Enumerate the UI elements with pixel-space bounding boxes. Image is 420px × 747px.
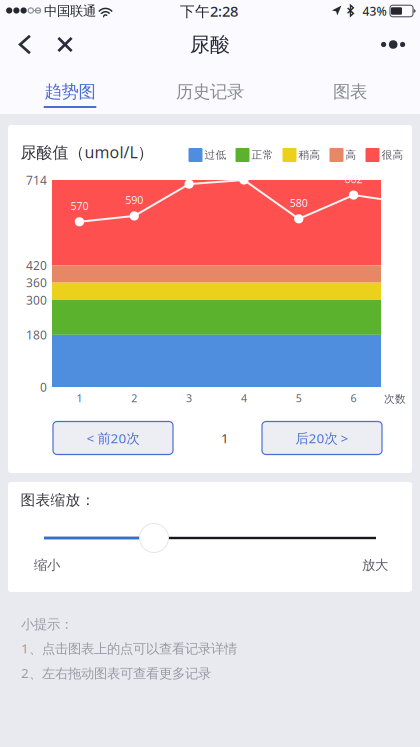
staticText: 580: [290, 196, 308, 210]
staticText: 趋势图: [44, 81, 95, 102]
staticText: 570: [70, 199, 88, 213]
staticText: 43%: [362, 3, 386, 19]
staticText: 历史记录: [176, 81, 244, 102]
staticText: 后20次 >: [295, 429, 348, 447]
staticText: 590: [125, 193, 143, 207]
staticText: 662: [345, 172, 363, 186]
staticText: 图表: [333, 81, 367, 102]
staticText: 1: [76, 391, 82, 405]
staticText: 5: [296, 391, 302, 405]
staticText: 缩小: [34, 557, 60, 573]
staticText: 正常: [251, 148, 273, 161]
staticText: 尿酸值（umol/L）: [20, 141, 153, 163]
staticText: 714: [26, 172, 47, 188]
staticText: 放大: [362, 557, 388, 573]
staticText: 2: [131, 391, 137, 405]
staticText: 360: [26, 275, 47, 291]
staticText: 中国联通: [44, 3, 96, 19]
staticText: 下午2:28: [180, 1, 238, 21]
staticText: 尿酸: [190, 32, 230, 57]
staticText: 图表缩放：: [20, 491, 95, 509]
staticText: 过低: [204, 148, 226, 161]
button[interactable]: Back: [5, 24, 45, 65]
staticText: 6: [351, 391, 357, 405]
staticText: 420: [26, 257, 47, 273]
staticText: 3: [186, 391, 192, 405]
staticText: 很高: [381, 148, 403, 161]
button[interactable]: 历史记录: [140, 65, 280, 114]
staticText: 次数: [384, 392, 406, 405]
button[interactable]: < 前20次: [53, 421, 173, 454]
staticText: 1: [221, 429, 229, 447]
button[interactable]: Close: [45, 24, 85, 65]
button[interactable]: 图表: [280, 65, 420, 114]
staticText: 1、点击图表上的点可以查看记录详情: [21, 639, 237, 657]
staticText: 180: [26, 327, 47, 343]
staticText: 4: [241, 391, 247, 405]
button[interactable]: 后20次 >: [262, 421, 382, 454]
button[interactable]: 趋势图: [0, 65, 140, 114]
staticText: 0: [40, 379, 47, 395]
staticText: < 前20次: [86, 429, 139, 447]
staticText: 300: [26, 292, 47, 308]
staticText: 2、左右拖动图表可查看更多记录: [21, 664, 211, 682]
staticText: 稍高: [298, 148, 320, 161]
button[interactable]: More options: [371, 24, 415, 65]
staticText: 高: [345, 148, 356, 161]
staticText: 小提示：: [21, 616, 73, 632]
